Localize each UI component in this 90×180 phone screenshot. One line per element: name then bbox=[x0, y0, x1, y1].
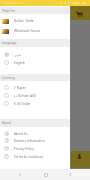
staticText: Wholesale Goods bbox=[14, 29, 40, 33]
staticText: Currency bbox=[2, 76, 16, 80]
staticText: About bbox=[2, 121, 11, 125]
staticText: T bbox=[6, 155, 8, 159]
staticText: Shop For bbox=[2, 9, 15, 13]
staticText: A bbox=[6, 132, 8, 136]
staticText: عربي bbox=[14, 53, 22, 57]
button[interactable]: د.إ Dirham AED bbox=[0, 92, 70, 100]
staticText: ₹ Rupee bbox=[14, 86, 27, 90]
staticText: د.إ Dirham AED bbox=[14, 94, 37, 98]
staticText: $ US Dollar bbox=[14, 102, 31, 106]
staticText: About Us bbox=[14, 132, 28, 136]
button[interactable]: ₹ Rupee bbox=[0, 84, 70, 92]
button[interactable]: Recents bbox=[65, 169, 76, 180]
button[interactable]: A bbox=[0, 130, 70, 138]
button[interactable]: Wholesale Goods bbox=[0, 26, 70, 36]
staticText: Language bbox=[2, 41, 17, 45]
button[interactable]: Account bbox=[71, 151, 90, 168]
staticText: Delivery Information bbox=[14, 139, 45, 143]
button[interactable]: English bbox=[0, 59, 70, 67]
staticText: English bbox=[14, 61, 25, 65]
button[interactable]: Back bbox=[14, 169, 25, 180]
staticText: P bbox=[6, 147, 8, 151]
button[interactable]: T bbox=[0, 153, 70, 161]
button[interactable]: D bbox=[0, 137, 70, 145]
button[interactable]: Shopping cart bbox=[71, 6, 90, 20]
button[interactable]: $ US Dollar bbox=[0, 100, 70, 108]
staticText: Bullion Trade bbox=[14, 19, 34, 23]
staticText: D bbox=[6, 139, 8, 143]
button[interactable]: عربي bbox=[0, 51, 70, 59]
staticText: Terms & Conditions bbox=[14, 155, 44, 159]
staticText: Account bbox=[75, 160, 84, 163]
button[interactable]: Bullion Trade bbox=[0, 16, 70, 26]
staticText: Privacy Policy bbox=[14, 147, 35, 151]
button[interactable]: Home bbox=[40, 169, 51, 180]
button[interactable]: P bbox=[0, 145, 70, 153]
